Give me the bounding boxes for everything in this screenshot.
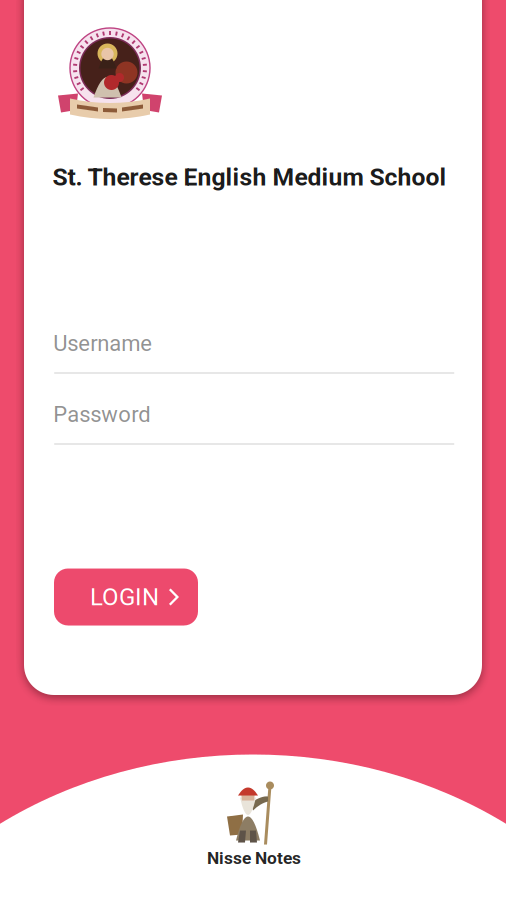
staticText: Nisse Notes	[207, 848, 301, 868]
staticText: Username	[53, 331, 152, 356]
staticText: Password	[53, 402, 150, 427]
button[interactable]: LOGIN	[54, 568, 198, 625]
staticText: St. Therese English Medium School	[52, 162, 446, 191]
button[interactable]: Username	[54, 330, 454, 373]
button[interactable]: Password	[54, 401, 454, 444]
staticText: LOGIN	[90, 583, 159, 611]
